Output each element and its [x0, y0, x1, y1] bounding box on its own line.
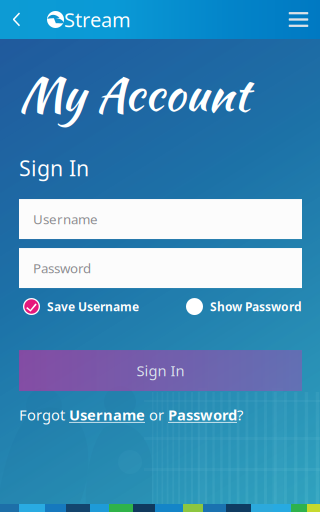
staticText: Username: [33, 210, 98, 228]
button[interactable]: Show Password: [186, 298, 302, 315]
staticText: Password: [168, 405, 237, 424]
button[interactable]: Menu: [277, 0, 320, 39]
button[interactable]: Back: [0, 0, 33, 39]
staticText: Show Password: [210, 299, 302, 314]
staticText: Stream: [64, 6, 131, 33]
button[interactable]: Save Username: [19, 298, 139, 315]
staticText: My Account: [19, 60, 249, 128]
staticText: Password: [33, 259, 91, 277]
staticText: Sign In: [136, 361, 184, 380]
staticText: Username: [69, 405, 145, 424]
staticText: Save Username: [47, 299, 139, 314]
staticText: ?: [237, 405, 243, 424]
staticText: Sign In: [19, 154, 89, 182]
staticText: Forgot: [19, 405, 69, 424]
staticText: or: [145, 405, 168, 424]
button[interactable]: Sign In: [19, 350, 302, 391]
